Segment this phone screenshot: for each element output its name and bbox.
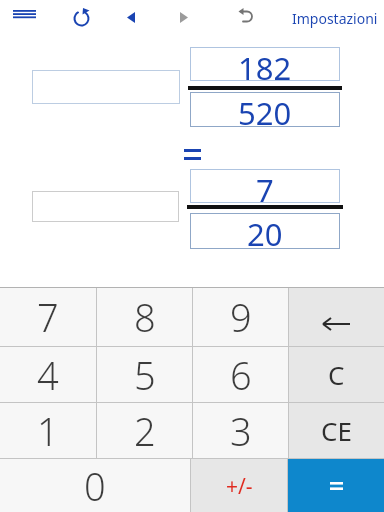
button[interactable]: 182 xyxy=(190,47,340,81)
staticText: 3 xyxy=(230,405,252,457)
button[interactable]: 9 xyxy=(193,288,288,346)
button[interactable]: C xyxy=(289,347,384,402)
button[interactable]: 20 xyxy=(190,213,340,249)
button[interactable]: 1 xyxy=(0,403,96,458)
button[interactable]: 2 xyxy=(97,403,192,458)
staticText: 0 xyxy=(84,460,106,512)
staticText: 7 xyxy=(256,169,274,203)
staticText: 1 xyxy=(37,405,59,457)
staticText: CE xyxy=(321,413,352,448)
button[interactable]: 7 xyxy=(0,288,96,346)
staticText: +/- xyxy=(226,472,253,501)
button[interactable] xyxy=(68,3,96,31)
button[interactable]: 3 xyxy=(193,403,288,458)
button[interactable]: 6 xyxy=(193,347,288,402)
button[interactable] xyxy=(6,0,42,28)
button[interactable] xyxy=(116,3,146,31)
staticText: 9 xyxy=(230,291,252,343)
button[interactable]: Impostazioni xyxy=(292,0,378,36)
button[interactable] xyxy=(169,3,199,31)
button[interactable]: CE xyxy=(289,403,384,458)
staticText: 5 xyxy=(134,349,156,401)
button[interactable] xyxy=(288,459,384,512)
button[interactable]: +/- xyxy=(191,459,287,512)
staticText: 520 xyxy=(238,92,292,127)
button[interactable]: 7 xyxy=(190,169,340,203)
staticText: 8 xyxy=(134,291,156,343)
button[interactable]: 520 xyxy=(190,92,340,127)
button[interactable] xyxy=(32,191,179,222)
staticText: C xyxy=(328,357,345,392)
staticText: 4 xyxy=(37,349,59,401)
staticText: 6 xyxy=(230,349,252,401)
button[interactable] xyxy=(231,1,261,29)
staticText: 20 xyxy=(247,213,283,249)
button[interactable]: 4 xyxy=(0,347,96,402)
staticText: 182 xyxy=(238,47,292,81)
button[interactable] xyxy=(32,70,180,104)
button[interactable]: 5 xyxy=(97,347,192,402)
staticText: 2 xyxy=(134,405,156,457)
button[interactable]: 8 xyxy=(97,288,192,346)
staticText: 7 xyxy=(37,291,59,343)
staticText: Impostazioni xyxy=(292,9,378,28)
button[interactable] xyxy=(289,288,384,346)
button[interactable]: 0 xyxy=(0,459,190,512)
